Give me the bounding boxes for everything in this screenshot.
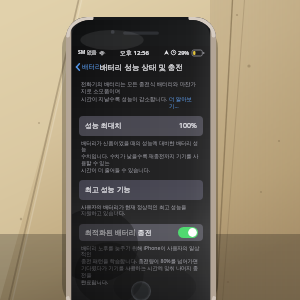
button[interactable]: 성능 최대치: [79, 116, 203, 136]
staticText: 시간이 지날수록 성능이 감소합니다.: [81, 95, 169, 102]
staticText: 사용자의 배터리가 현재 정상적인 최고 성능을 지원하고 있습니다.: [81, 203, 201, 217]
button[interactable]: 최적화된 배터리 충전: [79, 224, 203, 241]
staticText: SM 없음: [78, 49, 97, 56]
staticText: 배터리 성능 상태 및 충전: [100, 62, 183, 72]
staticText: 오후 12:56: [120, 49, 149, 57]
staticText: 최고 성능 기능: [85, 185, 131, 195]
staticText: 성능 최대치: [85, 121, 122, 131]
staticText: 29%: [178, 49, 190, 56]
staticText: 배터리: [82, 63, 102, 71]
staticText: 배터리가 신품이었을 때의 성능에 대비한 배터리 성능 수치입니다. 수치가 …: [81, 139, 201, 174]
staticText: 전화기의 배터리는 모든 충전식 배터리와 마찬가지로 소모품이며: [81, 80, 201, 95]
button[interactable]: 최적화된 배터리 충전 켜기/끄기: [178, 227, 198, 238]
button[interactable]: 배터리: [72, 61, 106, 73]
button[interactable]: 더 알아보기...: [169, 95, 201, 110]
button[interactable]: 최고 성능 기능: [79, 180, 203, 200]
staticText: 배터리 노후를 늦추기 위해 iPhone이 사용자의 일상적인 충전 패턴을 …: [81, 244, 201, 286]
staticText: 100%: [179, 121, 197, 131]
staticText: 최적화된 배터리 충전: [85, 228, 152, 238]
